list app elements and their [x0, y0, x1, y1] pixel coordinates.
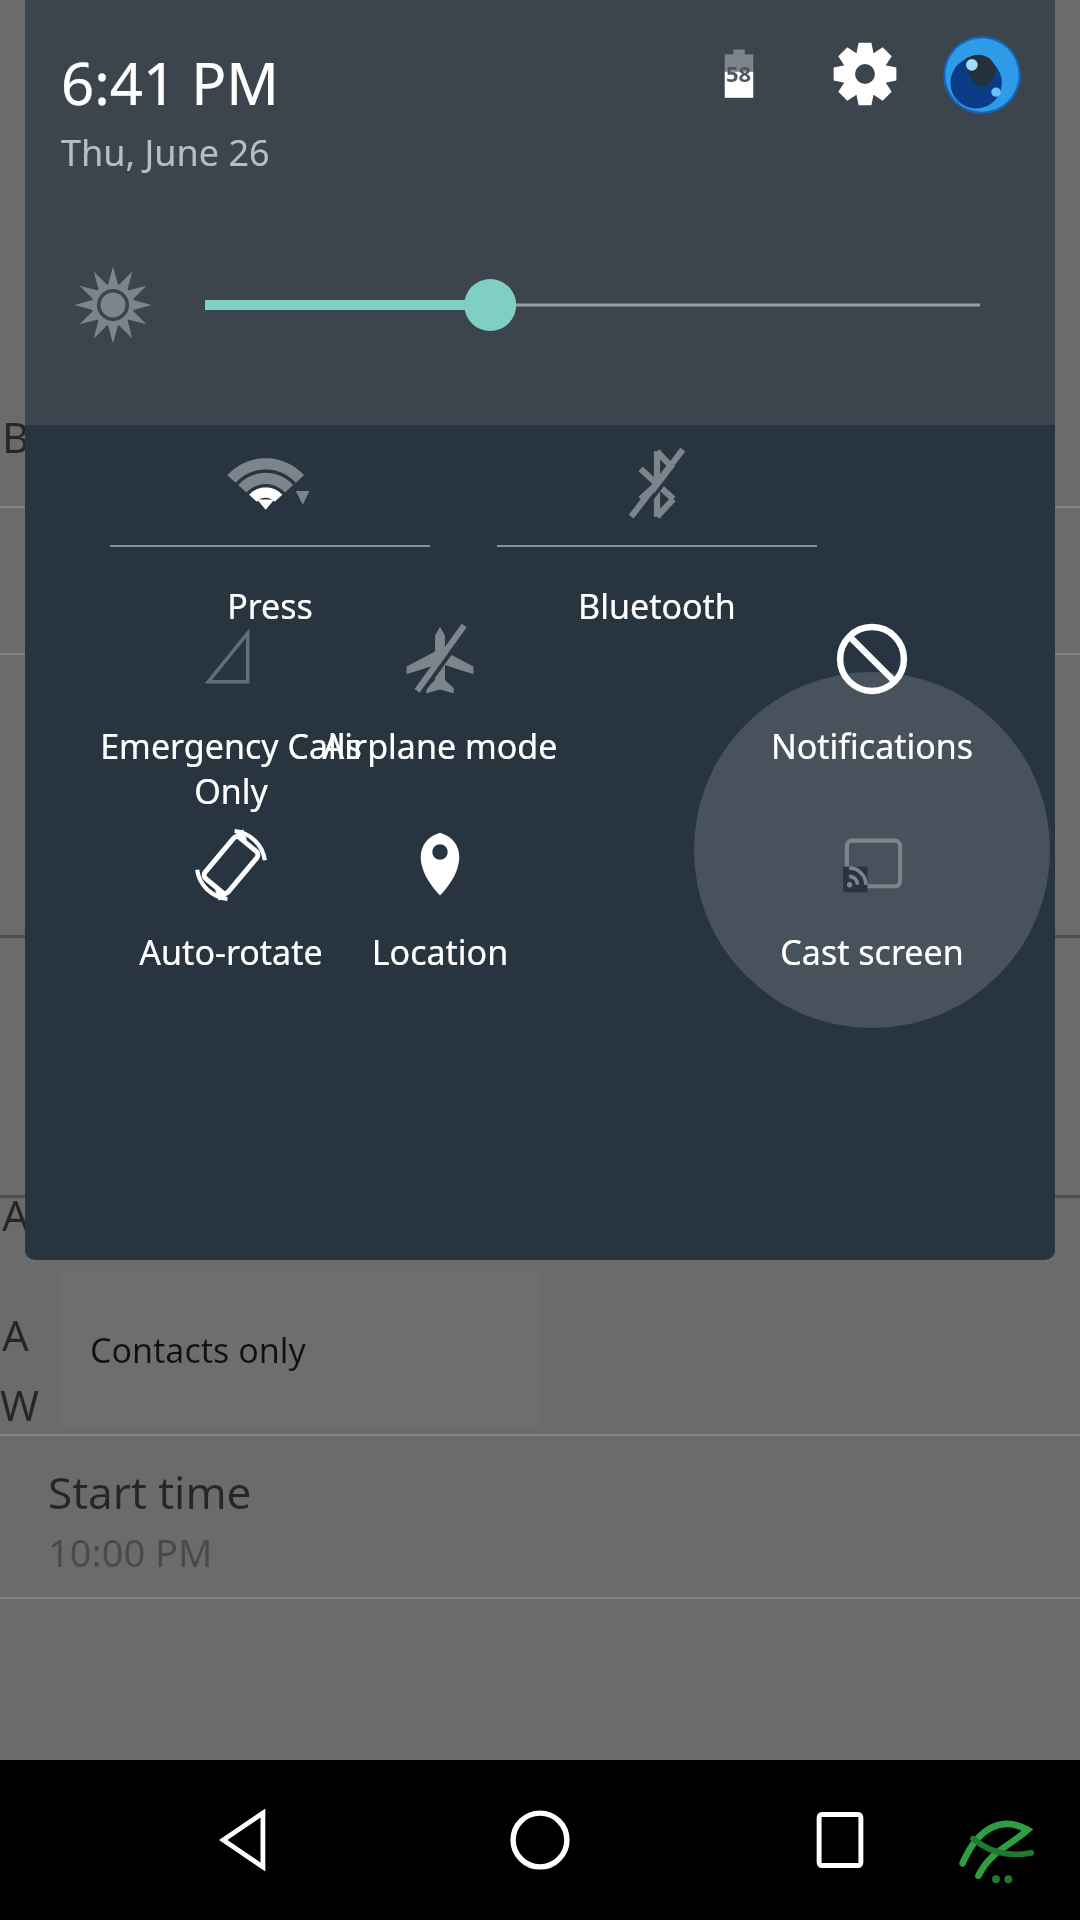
button[interactable]: Airplane mode — [290, 621, 590, 769]
staticText: Cast screen — [722, 929, 1022, 975]
staticText: W — [0, 1376, 40, 1433]
staticText: Auto-rotate — [81, 929, 381, 975]
button[interactable]: Start time — [0, 1436, 1080, 1597]
button[interactable]: Bluetooth — [497, 427, 817, 629]
button[interactable]: Wi-Fi — [110, 427, 430, 629]
staticText: B — [2, 408, 30, 465]
staticText: A — [2, 1306, 29, 1363]
staticText: End time — [48, 1775, 232, 1835]
button[interactable]: Recent apps — [760, 1760, 920, 1920]
staticText: Location — [290, 929, 590, 975]
staticText: 58 — [726, 58, 752, 88]
button[interactable]: Home — [460, 1760, 620, 1920]
button[interactable]: Brightness — [25, 248, 1055, 360]
button[interactable]: User profile — [943, 36, 1021, 114]
staticText: Thu, June 26 — [61, 128, 270, 177]
button[interactable]: Auto-rotate — [81, 827, 381, 975]
button[interactable]: Notifications — [722, 621, 1022, 769]
staticText: Airplane mode — [290, 723, 590, 769]
button[interactable]: Settings — [825, 34, 905, 114]
staticText: A — [2, 1186, 29, 1243]
staticText: Press — [110, 583, 430, 629]
button[interactable]: Back — [165, 1760, 325, 1920]
staticText: Start time — [48, 1462, 252, 1522]
staticText: Contacts only — [90, 1327, 306, 1373]
staticText: Bluetooth — [497, 583, 817, 629]
button[interactable]: Contacts only — [60, 1272, 538, 1428]
button[interactable]: Location — [290, 827, 590, 975]
staticText: 10:00 PM — [48, 1526, 213, 1578]
button[interactable]: Cast screen — [722, 827, 1022, 975]
button[interactable]: Battery 58 percent — [705, 40, 773, 108]
staticText: Notifications — [722, 723, 1022, 769]
staticText: 6:41 PM — [61, 43, 279, 122]
button[interactable]: Signal — [81, 621, 381, 813]
staticText: Emergency Calls Only — [81, 723, 381, 813]
